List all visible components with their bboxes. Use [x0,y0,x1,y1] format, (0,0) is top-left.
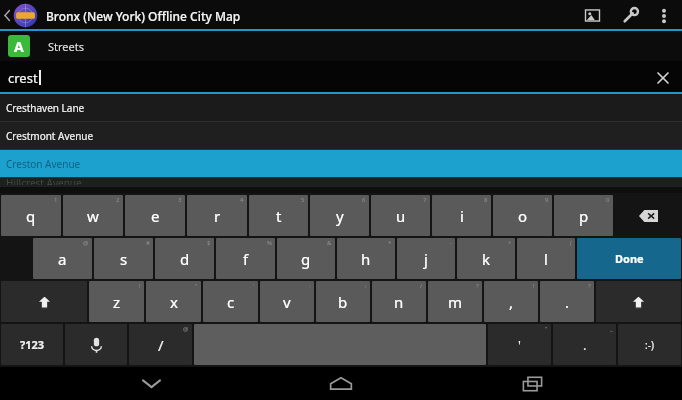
staticText: u [396,206,406,226]
button[interactable]: Recent apps [492,367,572,400]
button[interactable]: 8 [432,195,491,236]
staticText: ; [365,282,367,290]
staticText: o [518,206,528,226]
button[interactable]: + [457,238,515,279]
button[interactable]: : [260,281,314,322]
staticText: , [509,292,514,312]
staticText: z [113,292,121,312]
staticText: & [327,239,332,247]
staticText: y [336,206,344,226]
button[interactable]: ; [316,281,370,322]
staticText: * [388,239,392,247]
staticText: ?123 [20,337,45,352]
button[interactable]: Home [301,367,381,400]
button[interactable]: More options [650,0,678,31]
button[interactable]: Delete [615,195,681,236]
staticText: Hillcrest Avenue [6,176,82,185]
button[interactable]: Screenshot [574,0,610,31]
button[interactable]: Done [577,238,681,279]
staticText: s [120,249,128,269]
staticText: # [146,239,150,247]
staticText: h [361,249,371,269]
staticText: i [460,206,464,226]
staticText: / [420,282,423,290]
button[interactable]: Voice input [65,324,127,365]
button[interactable]: :-) [618,324,681,365]
staticText: " [545,325,548,333]
button[interactable]: 2 [63,195,123,236]
button[interactable]: 5 [249,195,308,236]
staticText: Done [615,251,644,266]
staticText: ! [139,282,141,290]
button[interactable]: 1 [1,195,61,236]
button[interactable]: Navigate up [3,0,38,31]
staticText: m [448,292,463,312]
staticText: @ [183,325,189,333]
button[interactable]: / [372,281,426,322]
button[interactable]: Tools [610,0,650,31]
staticText: k [482,249,491,269]
button[interactable]: ?123 [1,324,63,365]
staticText: crest [8,69,38,87]
staticText: A [14,37,24,56]
button[interactable]: $ [155,238,214,279]
button[interactable]: - [397,238,455,279]
staticText: $ [207,239,211,247]
staticText: 4 [240,196,244,204]
button[interactable]: " [488,324,551,365]
button[interactable]: Hide keyboard [111,367,191,400]
button[interactable]: 0 [554,195,613,236]
button[interactable]: Clear text [650,65,676,91]
staticText: Creston Avenue [6,157,81,171]
button[interactable]: @ [129,324,192,365]
button[interactable]: Crestmont Avenue [0,122,682,149]
button[interactable]: ! [89,281,144,322]
button[interactable]: Shift [1,281,87,322]
button[interactable]: ! [484,281,538,322]
staticText: + [508,239,512,247]
staticText: 1 [54,196,58,204]
button[interactable]: ? [540,281,594,322]
staticText: ! [533,282,535,290]
button[interactable]: A [0,31,682,61]
button[interactable]: * [337,238,395,279]
staticText: 0 [606,196,610,204]
staticText: x [170,292,178,312]
staticText: e [151,206,160,226]
staticText: g [301,249,311,269]
button[interactable]: ' [203,281,258,322]
staticText: ? [476,282,479,290]
staticText: v [283,292,291,312]
staticText: - [450,239,452,247]
button[interactable]: ? [428,281,482,322]
button[interactable]: @ [33,238,92,279]
staticText: q [26,206,36,226]
button[interactable]: " [146,281,201,322]
button[interactable]: 7 [371,195,430,236]
staticText: ' [518,336,521,354]
staticText: t [276,206,282,226]
staticText: c [227,292,235,312]
button[interactable]: 6 [310,195,369,236]
button[interactable]: Hillcrest Avenue [0,178,682,187]
staticText: Cresthaven Lane [6,101,85,115]
button[interactable]: # [94,238,153,279]
button[interactable]: Cresthaven Lane [0,94,682,121]
staticText: @ [83,239,89,247]
staticText: : [309,282,311,290]
button[interactable]: 9 [493,195,552,236]
staticText: l [544,249,548,269]
button[interactable]: & [277,238,335,279]
button[interactable]: 3 [125,195,185,236]
staticText: j [424,249,428,269]
staticText: " [195,282,198,290]
button[interactable]: % [216,238,275,279]
button[interactable]: 4 [187,195,247,236]
button[interactable]: Creston Avenue [0,150,682,177]
staticText: w [87,206,99,226]
staticText: Crestmont Avenue [6,129,94,143]
button[interactable]: _ [553,324,616,365]
button[interactable]: Shift [596,281,681,322]
button[interactable]: ( [517,238,575,279]
